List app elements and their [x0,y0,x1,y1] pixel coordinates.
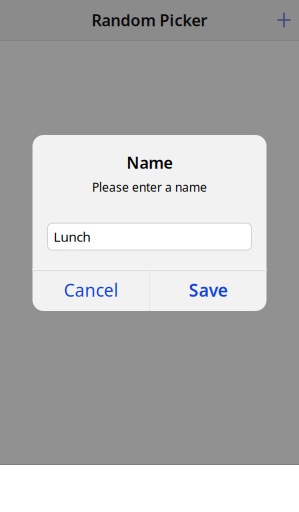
staticText: Random Picker [91,9,207,31]
button[interactable]: Add [269,5,299,35]
button[interactable]: Save [150,271,266,311]
staticText: Name [126,152,172,173]
button[interactable]: Cancel [32,271,149,311]
staticText: Cancel [64,278,118,301]
staticText: Lunch [53,228,90,245]
staticText: Save [189,278,228,301]
staticText: Please enter a name [92,179,207,195]
button[interactable]: Name text field [47,223,251,250]
